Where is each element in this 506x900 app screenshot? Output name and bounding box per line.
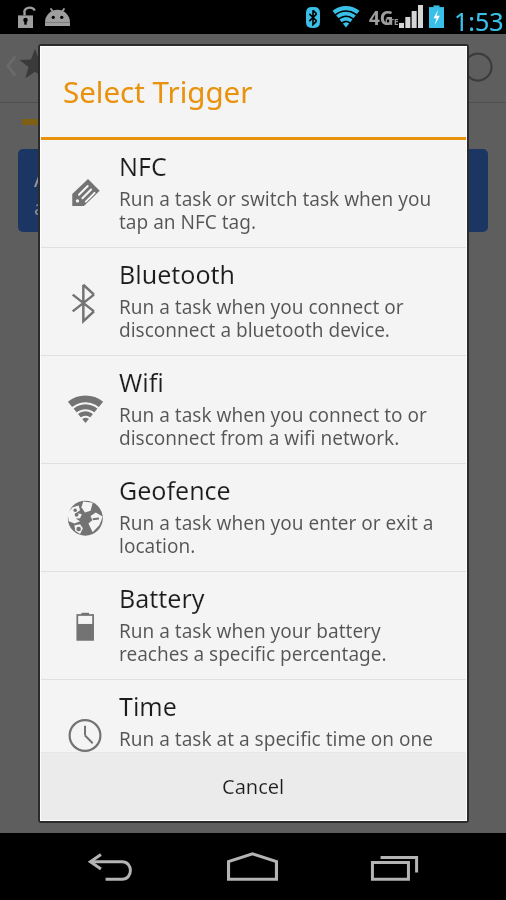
button[interactable]: Wifi [41,356,466,463]
staticText: all day [34,194,95,221]
staticText: Cancel [222,773,285,800]
staticText: Run a task when you connect or disconnec… [119,294,404,343]
staticText: Select Trigger [63,71,253,111]
staticText: Geofence [119,473,231,507]
staticText: Bluetooth [119,257,236,291]
staticText: Alarm trigger [34,162,180,193]
button[interactable]: Home [218,841,286,891]
staticText: 4G [369,5,394,31]
staticText: Run a task when you connect to or discon… [119,402,427,451]
button[interactable]: Geofence [41,464,466,571]
button[interactable]: Recents [361,844,429,890]
staticText: Run a task when you enter or exit a loca… [119,510,434,559]
staticText: Wifi [119,365,164,399]
staticText: Time [119,689,177,723]
button[interactable]: Battery [41,572,466,679]
staticText: Run a task at a specific time on one of … [119,726,433,752]
staticText: Run a task when your battery reaches a s… [119,618,387,667]
staticText: Run a task or switch task when you tap a… [119,186,432,235]
button[interactable]: Bluetooth [41,248,466,355]
button[interactable]: NFC [41,140,466,247]
staticText: LTE [385,16,399,27]
staticText: NFC [119,149,167,183]
button[interactable]: Cancel [41,753,466,820]
staticText: 1:53 [454,4,504,38]
button[interactable]: Back [78,844,146,890]
staticText: Battery [119,581,205,615]
button[interactable]: Time [41,680,466,752]
